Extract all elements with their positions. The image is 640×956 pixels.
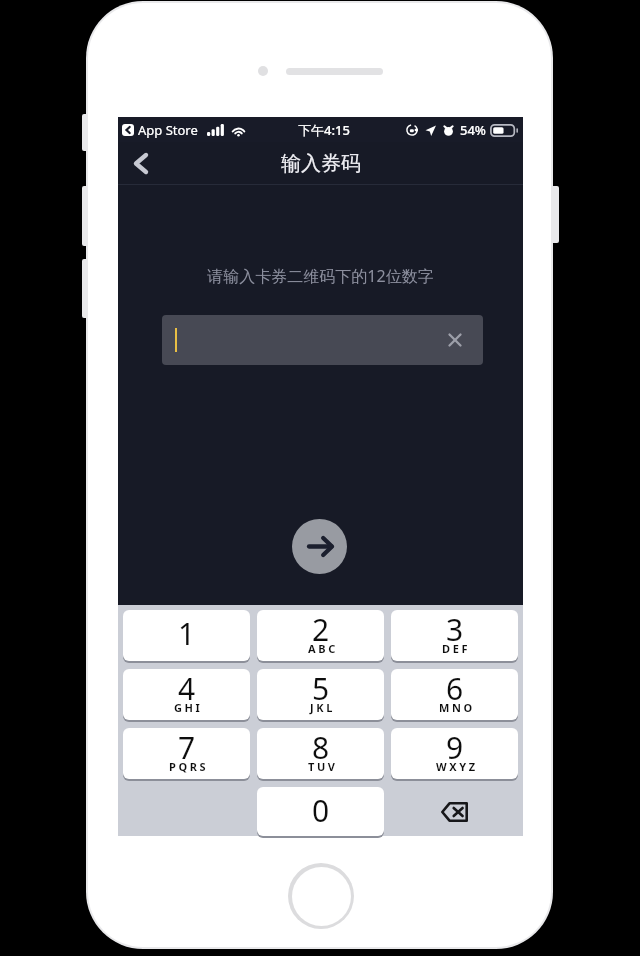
staticText: JKL (310, 700, 335, 715)
button[interactable]: 9 (391, 728, 518, 779)
button[interactable]: Clear (444, 329, 466, 351)
button[interactable]: 4 (123, 669, 250, 720)
staticText: GHI (174, 700, 203, 715)
staticText: 9 (446, 728, 464, 768)
staticText: WXYZ (436, 759, 478, 774)
button[interactable]: 7 (123, 728, 250, 779)
button[interactable]: 3 (391, 610, 518, 661)
staticText: 2 (312, 610, 330, 650)
staticText: 3 (446, 610, 464, 650)
staticText: 54% (460, 121, 486, 139)
button[interactable]: 2 (257, 610, 384, 661)
staticText: App Store (138, 121, 198, 139)
button[interactable]: Submit (292, 519, 347, 574)
staticText: ABC (308, 641, 338, 656)
staticText: 请输入卡券二维码下的12位数字 (118, 265, 523, 287)
staticText: 8 (312, 728, 330, 768)
button[interactable]: Backspace (391, 787, 518, 836)
staticText: 6 (446, 669, 464, 709)
staticText: 0 (312, 790, 330, 831)
button[interactable]: 6 (391, 669, 518, 720)
staticText: DEF (442, 641, 471, 656)
button[interactable]: Clear (162, 315, 483, 365)
staticText: 下午4:15 (298, 121, 350, 139)
staticText: 1 (178, 613, 196, 654)
staticText: MNO (439, 700, 475, 715)
button[interactable]: Back (118, 142, 166, 185)
staticText: 输入券码 (281, 151, 361, 176)
button[interactable]: 8 (257, 728, 384, 779)
staticText: 7 (178, 728, 196, 768)
button[interactable]: 1 (123, 610, 250, 661)
staticText: TUV (308, 759, 338, 774)
staticText: PQRS (169, 759, 209, 774)
staticText: 4 (178, 669, 196, 709)
button[interactable]: 0 (257, 787, 384, 836)
staticText: 5 (312, 669, 330, 709)
button[interactable]: 5 (257, 669, 384, 720)
